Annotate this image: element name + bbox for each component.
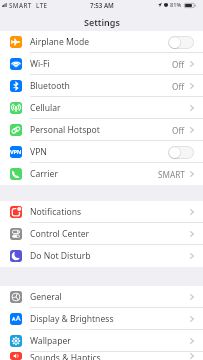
- staticText: VPN: [30, 146, 47, 158]
- staticText: Airplane Mode: [30, 36, 90, 48]
- staticText: Wi-Fi: [30, 58, 50, 70]
- button[interactable]: Personal Hotspot: [0, 119, 203, 141]
- button[interactable]: Airplane Mode: [0, 31, 203, 53]
- staticText: Bluetooth: [30, 80, 70, 92]
- staticText: Control Center: [30, 228, 90, 240]
- staticText: Wallpaper: [30, 335, 71, 347]
- staticText: Off: [172, 59, 185, 70]
- button[interactable]: General: [0, 286, 203, 308]
- staticText: Notifications: [30, 206, 82, 218]
- button[interactable]: Wallpaper: [0, 330, 203, 352]
- button[interactable]: Airplane Mode: [168, 36, 194, 49]
- button[interactable]: Display & Brightness: [0, 308, 203, 330]
- button[interactable]: Bluetooth: [0, 75, 203, 97]
- button[interactable]: VPN: [0, 141, 203, 163]
- staticText: SMART: [9, 1, 32, 9]
- button[interactable]: Cellular: [0, 97, 203, 119]
- staticText: SMART: [158, 169, 185, 180]
- staticText: Off: [172, 81, 185, 92]
- staticText: VPN: [10, 148, 22, 156]
- staticText: Do Not Disturb: [30, 250, 91, 262]
- staticText: Carrier: [30, 168, 58, 180]
- staticText: Personal Hotspot: [30, 124, 100, 136]
- staticText: Settings: [84, 16, 120, 28]
- staticText: Off: [172, 125, 185, 136]
- staticText: 7:53 AM: [90, 1, 114, 9]
- button[interactable]: VPN: [168, 146, 194, 159]
- staticText: Display & Brightness: [30, 313, 114, 325]
- staticText: Cellular: [30, 102, 61, 114]
- button[interactable]: Control Center: [0, 223, 203, 245]
- staticText: LTE: [36, 1, 48, 9]
- staticText: 81%: [170, 1, 182, 9]
- staticText: Sounds & Haptics: [30, 352, 101, 360]
- staticText: General: [30, 291, 62, 303]
- button[interactable]: Notifications: [0, 201, 203, 223]
- button[interactable]: Sounds & Haptics: [0, 352, 203, 360]
- button[interactable]: Wi-Fi: [0, 53, 203, 75]
- button[interactable]: Do Not Disturb: [0, 245, 203, 267]
- button[interactable]: Carrier: [0, 163, 203, 185]
